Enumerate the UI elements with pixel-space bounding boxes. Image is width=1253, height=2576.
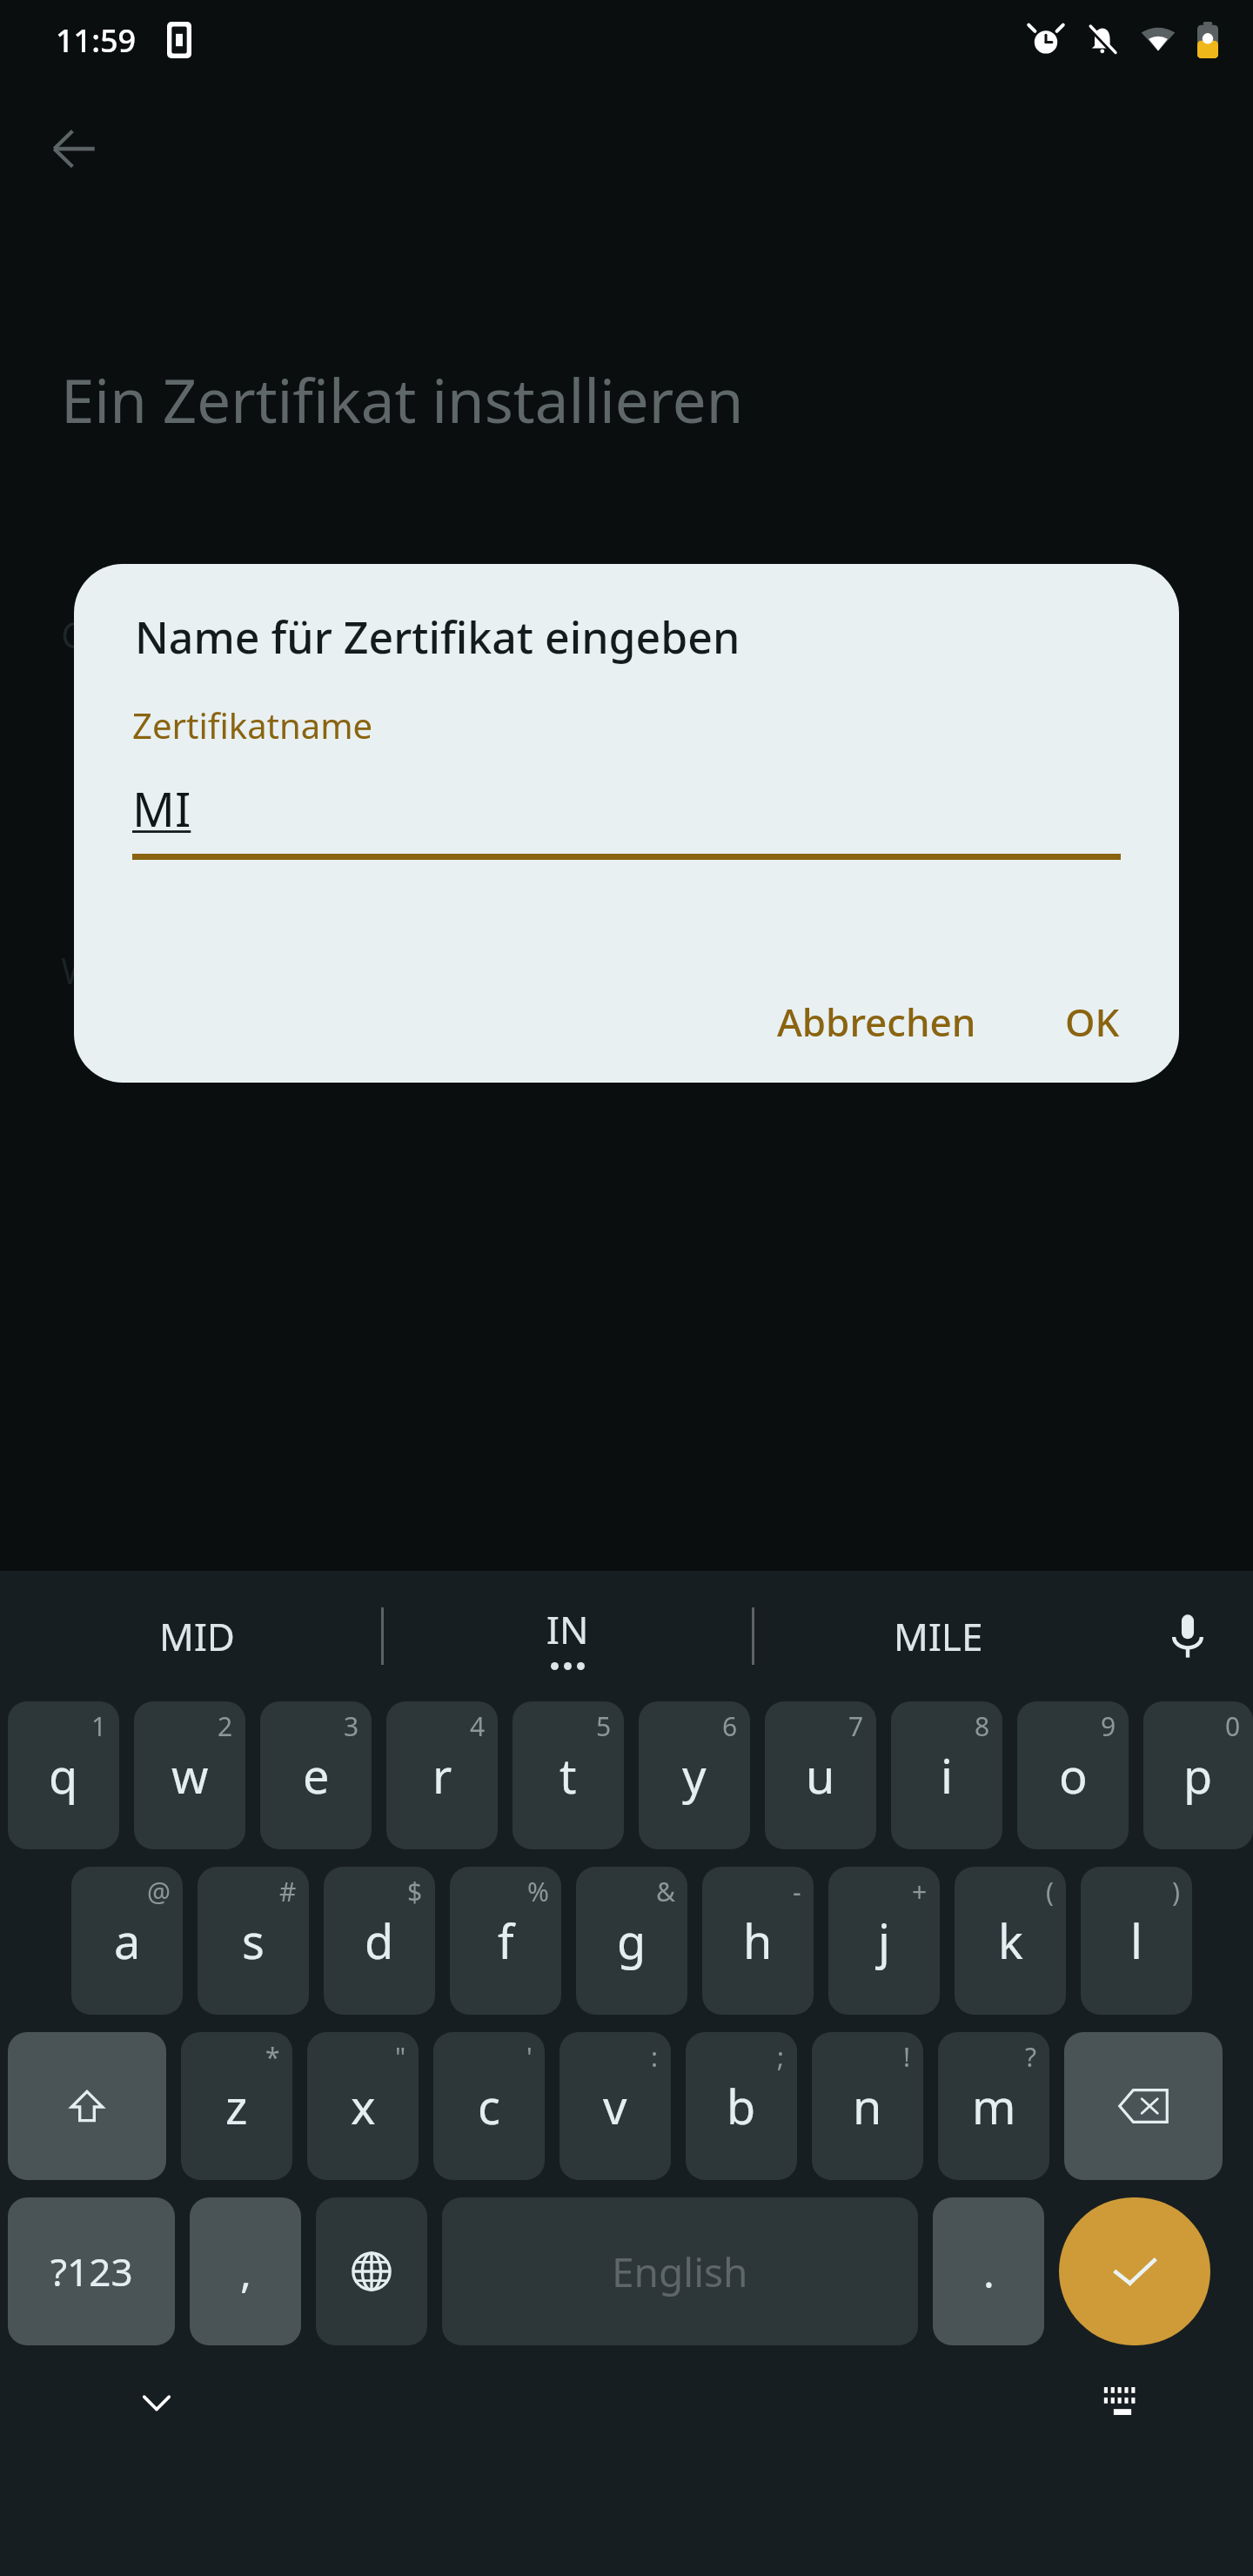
staticText: : [651, 2039, 659, 2075]
staticText: q [49, 1743, 78, 1808]
staticText: ! [903, 2039, 911, 2075]
button[interactable]: 4 [386, 1701, 498, 1849]
staticText: ( [1046, 1874, 1054, 1909]
staticText: English [612, 2244, 748, 2299]
button[interactable]: , [190, 2197, 301, 2345]
button[interactable]: Enter [1059, 2197, 1210, 2345]
staticText: 11:59 [56, 19, 137, 62]
staticText: 6 [722, 1708, 738, 1744]
button[interactable]: ' [433, 2032, 545, 2180]
staticText: 2 [218, 1708, 233, 1744]
button[interactable]: Back [23, 97, 125, 200]
staticText: - [793, 1874, 801, 1909]
staticText: + [912, 1874, 928, 1909]
staticText: Abbrechen [777, 996, 976, 1048]
button[interactable]: 0 [1143, 1701, 1253, 1849]
button[interactable]: ) [1081, 1867, 1192, 2015]
staticText: IN [546, 1603, 589, 1655]
button[interactable]: # [198, 1867, 309, 2015]
staticText: y [682, 1743, 707, 1808]
staticText: 8 [975, 1708, 990, 1744]
staticText: e [303, 1743, 330, 1808]
staticText: ; [777, 2039, 785, 2075]
staticText: v [603, 2074, 627, 2138]
button[interactable]: Change language [316, 2197, 427, 2345]
button[interactable]: English [442, 2197, 918, 2345]
staticText: h [743, 1909, 773, 1973]
staticText: 5 [596, 1708, 612, 1744]
button[interactable]: 3 [260, 1701, 372, 1849]
button[interactable]: 5 [513, 1701, 624, 1849]
button[interactable]: Abbrechen [756, 982, 997, 1062]
staticText: # [279, 1874, 297, 1909]
button[interactable]: 8 [891, 1701, 1002, 1849]
button[interactable]: MID [12, 1571, 381, 1701]
button[interactable]: $ [324, 1867, 435, 2015]
button[interactable]: IN [384, 1571, 752, 1701]
button[interactable]: % [450, 1867, 561, 2015]
button[interactable]: & [576, 1867, 687, 2015]
staticText: n [853, 2074, 882, 2138]
button[interactable]: 9 [1017, 1701, 1129, 1849]
staticText: 4 [470, 1708, 486, 1744]
button[interactable]: Hide keyboard [113, 2358, 200, 2445]
button[interactable]: @ [71, 1867, 183, 2015]
button[interactable]: OK [1044, 982, 1141, 1062]
staticText: b [727, 2074, 756, 2138]
staticText: " [395, 2039, 406, 2075]
button[interactable]: ? [938, 2032, 1049, 2180]
staticText: c [478, 2074, 500, 2138]
button[interactable]: Shift [8, 2032, 166, 2180]
button[interactable]: " [307, 2032, 419, 2180]
staticText: l [1130, 1909, 1142, 1973]
button[interactable]: ?123 [8, 2197, 175, 2345]
button[interactable]: 1 [8, 1701, 119, 1849]
button[interactable]: + [828, 1867, 940, 2015]
staticText: w [171, 1743, 209, 1808]
staticText: MID [159, 1610, 235, 1662]
staticText: f [498, 1909, 514, 1973]
staticText: MI [132, 776, 191, 841]
button[interactable]: ( [955, 1867, 1066, 2015]
staticText: Wi-Fi [61, 945, 145, 995]
staticText: s [242, 1909, 265, 1973]
staticText: @ [147, 1874, 171, 1909]
button[interactable]: 2 [134, 1701, 245, 1849]
staticText: r [432, 1743, 452, 1808]
button[interactable]: ; [686, 2032, 797, 2180]
button[interactable]: 7 [765, 1701, 876, 1849]
staticText: z [225, 2074, 248, 2138]
staticText: i [941, 1743, 953, 1808]
button[interactable]: MILE [754, 1571, 1122, 1701]
staticText: ? [1025, 2039, 1037, 2075]
staticText: 1 [91, 1708, 107, 1744]
staticText: 0 [1225, 1708, 1241, 1744]
staticText: 3 [344, 1708, 359, 1744]
staticText: Ein Zertifikat installieren [61, 359, 744, 440]
staticText: u [806, 1743, 835, 1808]
staticText: OK [1065, 996, 1120, 1048]
staticText: ' [526, 2039, 533, 2075]
staticText: d [365, 1909, 394, 1973]
staticText: MILE [894, 1610, 983, 1662]
staticText: t [559, 1743, 577, 1808]
button[interactable]: 6 [639, 1701, 750, 1849]
button[interactable]: Voice input [1122, 1571, 1253, 1701]
staticText: * [265, 2039, 280, 2075]
button[interactable]: : [559, 2032, 671, 2180]
staticText: g [617, 1909, 647, 1973]
button[interactable]: - [702, 1867, 814, 2015]
button[interactable]: Switch keyboard [1079, 2358, 1166, 2445]
staticText: a [114, 1909, 141, 1973]
button[interactable]: ! [812, 2032, 923, 2180]
button[interactable]: * [181, 2032, 292, 2180]
staticText: 7 [848, 1708, 864, 1744]
staticText: p [1183, 1743, 1213, 1808]
staticText: ) [1172, 1874, 1180, 1909]
staticText: % [527, 1874, 549, 1909]
button[interactable]: Backspace [1064, 2032, 1223, 2180]
staticText: m [972, 2074, 1016, 2138]
staticText: Zertifikatname [132, 701, 373, 748]
staticText: . [983, 2244, 995, 2300]
button[interactable]: . [933, 2197, 1044, 2345]
